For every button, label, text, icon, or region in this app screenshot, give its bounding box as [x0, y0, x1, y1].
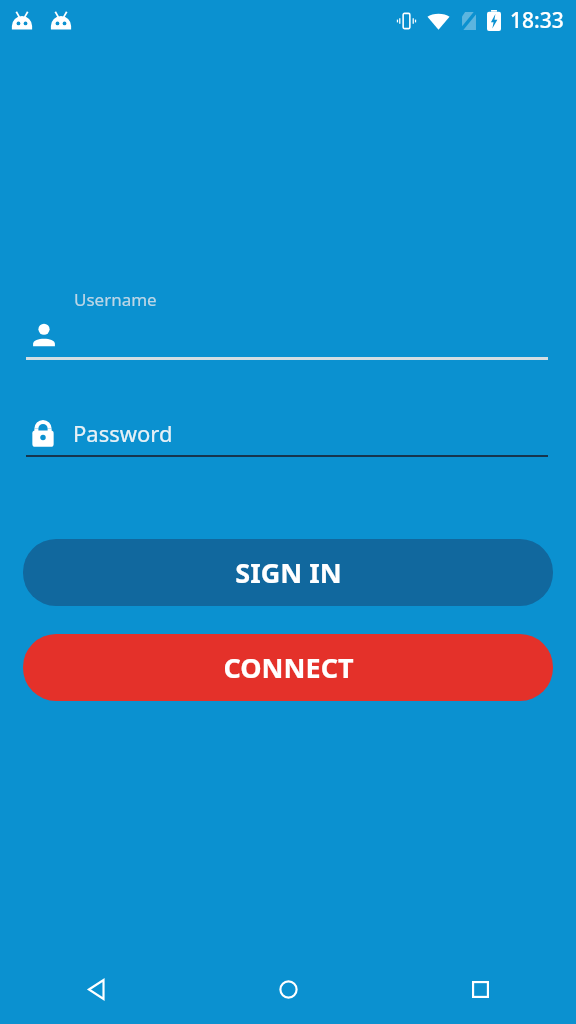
button[interactable]: SIGN IN: [23, 539, 553, 606]
button[interactable]: Recent apps: [384, 955, 576, 1024]
button[interactable]: Back: [0, 955, 192, 1024]
button[interactable]: CONNECT: [23, 634, 553, 701]
staticText: SIGN IN: [235, 554, 342, 591]
button[interactable]: Password: [0, 414, 576, 457]
button[interactable]: [0, 312, 576, 360]
staticText: 18:33: [510, 6, 564, 35]
staticText: Username: [74, 288, 157, 311]
button[interactable]: Home: [192, 955, 384, 1024]
staticText: Password: [73, 418, 173, 448]
staticText: CONNECT: [223, 649, 354, 686]
